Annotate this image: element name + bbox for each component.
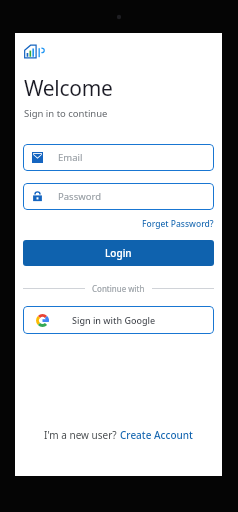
button[interactable]: I'm a new user? [15,425,222,445]
button[interactable]: Email [23,144,214,171]
other: Google [36,314,49,327]
staticText: Sign in with Google [72,314,156,326]
button[interactable]: Login [23,240,214,266]
staticText: Welcome [24,74,113,103]
staticText: I'm a new user? [44,428,120,442]
staticText: Continue with [92,283,145,294]
staticText: Forget Password? [142,218,214,230]
button[interactable]: Forget Password? [142,217,222,231]
button[interactable]: Google [23,306,214,334]
other: Email [32,152,43,163]
staticText: Login [105,246,132,260]
staticText: Email [58,151,83,164]
staticText: Sign in to continue [24,107,108,120]
staticText: Create Account [120,428,193,442]
other: Password [32,191,43,202]
staticText: Password [58,190,101,203]
button[interactable]: Password [23,183,214,210]
